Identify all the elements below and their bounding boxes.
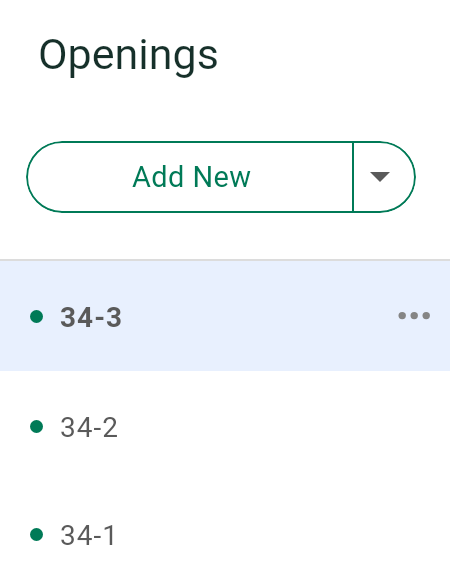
button[interactable]: More add options (354, 141, 416, 213)
button[interactable]: 34-3 (0, 261, 450, 371)
button[interactable]: More options (392, 294, 436, 338)
button[interactable]: Add New (26, 141, 352, 213)
button[interactable]: 34-1 (0, 481, 450, 588)
staticText: 34-1 (60, 519, 119, 552)
staticText: Add New (132, 160, 252, 194)
staticText: 34-2 (60, 411, 119, 444)
button[interactable]: 34-2 (0, 371, 450, 481)
staticText: 34-3 (60, 301, 124, 334)
staticText: Openings (38, 29, 219, 79)
